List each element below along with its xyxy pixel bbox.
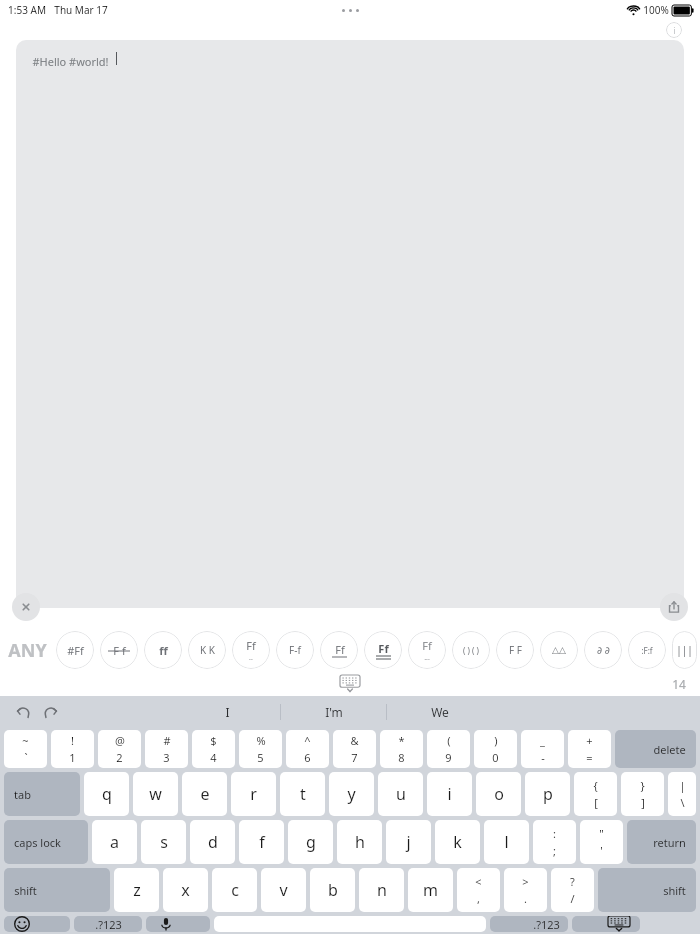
- button[interactable]: v: [261, 868, 306, 912]
- button[interactable]: return: [627, 820, 696, 864]
- button[interactable]: ": [580, 820, 623, 864]
- staticText: p: [543, 783, 553, 805]
- button[interactable]: Font style 0: [56, 631, 94, 669]
- button[interactable]: i: [427, 772, 472, 816]
- button[interactable]: l: [484, 820, 529, 864]
- button[interactable]: c: [212, 868, 257, 912]
- staticText: $: [210, 733, 217, 748]
- button[interactable]: I'm: [281, 704, 386, 720]
- button[interactable]: :: [533, 820, 576, 864]
- button[interactable]: }: [621, 772, 664, 816]
- button[interactable]: Hide keyboard: [340, 675, 360, 693]
- button[interactable]: $: [192, 730, 235, 768]
- button[interactable]: caps lock: [4, 820, 88, 864]
- button[interactable]: .?123: [74, 916, 142, 932]
- button[interactable]: Info: [666, 22, 682, 38]
- button[interactable]: k: [435, 820, 480, 864]
- button[interactable]: r: [231, 772, 276, 816]
- button[interactable]: Font style 2: [144, 631, 182, 669]
- button[interactable]: w: [133, 772, 178, 816]
- button[interactable]: {: [574, 772, 617, 816]
- button[interactable]: ANY: [8, 638, 53, 663]
- staticText: ]: [641, 795, 645, 810]
- button[interactable]: _: [521, 730, 564, 768]
- button[interactable]: #: [145, 730, 188, 768]
- button[interactable]: t: [280, 772, 325, 816]
- button[interactable]: !: [51, 730, 94, 768]
- other: Dictation: [158, 916, 174, 932]
- button[interactable]: Font style 4: [232, 631, 270, 669]
- button[interactable]: We: [387, 704, 492, 720]
- button[interactable]: d: [190, 820, 235, 864]
- button[interactable]: Font style 3: [188, 631, 226, 669]
- button[interactable]: >: [504, 868, 547, 912]
- button[interactable]: I: [175, 704, 280, 720]
- button[interactable]: Font style 8: [408, 631, 446, 669]
- button[interactable]: Font style 7: [364, 631, 402, 669]
- button[interactable]: s: [141, 820, 186, 864]
- staticText: *: [398, 733, 405, 748]
- button[interactable]: Close: [12, 593, 40, 621]
- button[interactable]: Font style 11: [540, 631, 578, 669]
- button[interactable]: m: [408, 868, 453, 912]
- button[interactable]: (: [427, 730, 470, 768]
- staticText: I'm: [325, 704, 343, 720]
- staticText: z: [133, 879, 141, 901]
- button[interactable]: a: [92, 820, 137, 864]
- staticText: f: [259, 831, 265, 853]
- button[interactable]: h: [337, 820, 382, 864]
- button[interactable]: &: [333, 730, 376, 768]
- button[interactable]: shift: [4, 868, 110, 912]
- button[interactable]: b: [310, 868, 355, 912]
- button[interactable]: p: [525, 772, 570, 816]
- button[interactable]: ?: [551, 868, 594, 912]
- button[interactable]: ^: [286, 730, 329, 768]
- button[interactable]: g: [288, 820, 333, 864]
- button[interactable]: Dictation: [146, 916, 210, 932]
- button[interactable]: +: [568, 730, 611, 768]
- staticText: ?: [570, 874, 575, 889]
- button[interactable]: .?123: [490, 916, 568, 932]
- button[interactable]: Font style 13: [628, 631, 666, 669]
- button[interactable]: shift: [598, 868, 696, 912]
- button[interactable]: Hide keyboard: [572, 916, 640, 932]
- button[interactable]: Font style 10: [496, 631, 534, 669]
- staticText: &: [350, 733, 359, 748]
- button[interactable]: Font style 6: [320, 631, 358, 669]
- staticText: ~: [22, 733, 29, 748]
- button[interactable]: Font style 12: [584, 631, 622, 669]
- staticText: ..: [249, 653, 253, 663]
- button[interactable]: x: [163, 868, 208, 912]
- staticText: k: [453, 831, 462, 853]
- button[interactable]: tab: [4, 772, 80, 816]
- button[interactable]: |: [668, 772, 696, 816]
- button[interactable]: Font style 5: [276, 631, 314, 669]
- button[interactable]: f: [239, 820, 284, 864]
- button[interactable]: ): [474, 730, 517, 768]
- button[interactable]: y: [329, 772, 374, 816]
- button[interactable]: <: [457, 868, 500, 912]
- staticText: \: [680, 795, 685, 810]
- button[interactable]: Emoji: [4, 916, 70, 932]
- button[interactable]: Font style 14: [672, 631, 697, 669]
- button[interactable]: o: [476, 772, 521, 816]
- button[interactable]: %: [239, 730, 282, 768]
- button[interactable]: Font style 1: [100, 631, 138, 669]
- button[interactable]: u: [378, 772, 423, 816]
- staticText: r: [250, 783, 257, 805]
- button[interactable]: delete: [615, 730, 696, 768]
- button[interactable]: Undo: [14, 703, 32, 721]
- button[interactable]: e: [182, 772, 227, 816]
- button[interactable]: Font style 9: [452, 631, 490, 669]
- button[interactable]: q: [84, 772, 129, 816]
- staticText: .: [524, 891, 527, 906]
- button[interactable]: @: [98, 730, 141, 768]
- button[interactable]: z: [114, 868, 159, 912]
- button[interactable]: *: [380, 730, 423, 768]
- button[interactable]: j: [386, 820, 431, 864]
- button[interactable]: n: [359, 868, 404, 912]
- button[interactable]: Share: [660, 593, 688, 621]
- button[interactable]: Redo: [42, 703, 60, 721]
- button[interactable]: ~: [4, 730, 47, 768]
